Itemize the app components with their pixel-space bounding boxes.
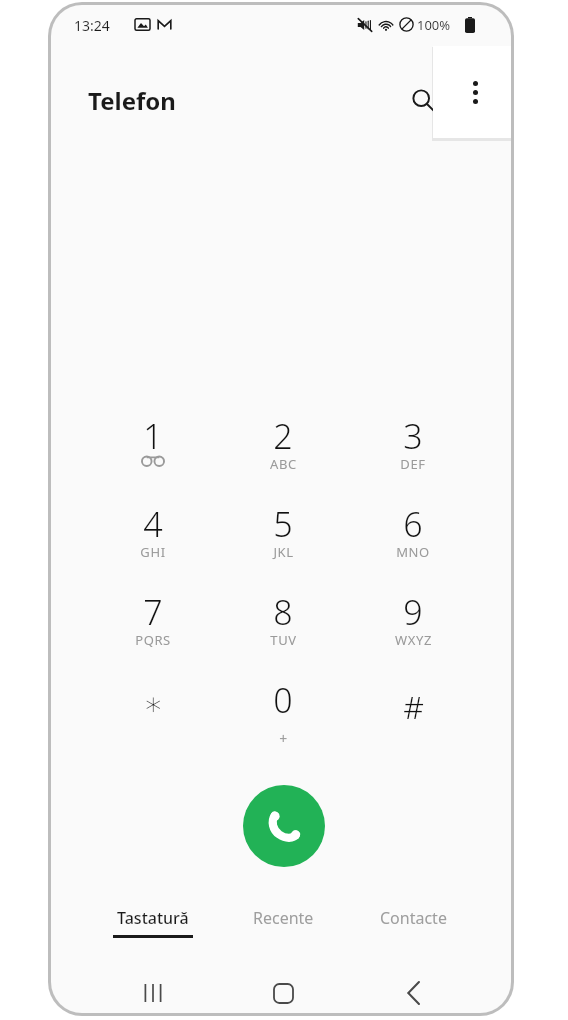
staticText: MNO: [396, 543, 430, 561]
staticText: ABC: [270, 455, 297, 473]
button[interactable]: 2: [238, 409, 328, 493]
staticText: +: [279, 729, 288, 748]
button[interactable]: 0: [238, 673, 328, 757]
button[interactable]: More options: [451, 68, 499, 116]
staticText: ∗: [143, 685, 164, 722]
staticText: 100%: [417, 16, 451, 34]
staticText: Telefon: [88, 84, 176, 117]
button[interactable]: Home: [257, 967, 309, 1013]
button[interactable]: 3: [368, 409, 458, 493]
button[interactable]: Recent apps: [127, 967, 179, 1013]
staticText: 1: [143, 413, 163, 459]
staticText: 3: [403, 413, 423, 459]
staticText: Contacte: [380, 907, 447, 929]
staticText: 2: [273, 413, 293, 459]
staticText: 13:24: [74, 16, 110, 35]
button[interactable]: Search: [399, 76, 447, 124]
button[interactable]: Back: [387, 967, 439, 1013]
button[interactable]: 7: [108, 585, 198, 669]
staticText: TUV: [270, 631, 297, 649]
button[interactable]: ∗: [108, 673, 198, 757]
button[interactable]: 9: [368, 585, 458, 669]
staticText: 5: [273, 501, 293, 547]
staticText: PQRS: [135, 631, 171, 649]
staticText: 0: [273, 677, 293, 723]
button[interactable]: Call: [243, 785, 325, 867]
staticText: #: [403, 685, 424, 729]
staticText: JKL: [273, 543, 294, 561]
button[interactable]: 8: [238, 585, 328, 669]
button[interactable]: 1: [108, 409, 198, 493]
staticText: 7: [143, 589, 163, 635]
staticText: 6: [403, 501, 423, 547]
button[interactable]: Tastatură: [88, 895, 218, 951]
staticText: 9: [403, 589, 423, 635]
button[interactable]: 4: [108, 497, 198, 581]
button[interactable]: Contacte: [348, 895, 478, 951]
button[interactable]: Recente: [218, 895, 348, 951]
button[interactable]: #: [368, 673, 458, 757]
staticText: Tastatură: [117, 907, 189, 929]
staticText: Recente: [253, 907, 314, 929]
button[interactable]: 5: [238, 497, 328, 581]
staticText: DEF: [400, 455, 426, 473]
staticText: 8: [273, 589, 293, 635]
button[interactable]: 6: [368, 497, 458, 581]
staticText: 4: [143, 501, 163, 547]
staticText: GHI: [140, 543, 166, 561]
staticText: WXYZ: [395, 631, 432, 649]
